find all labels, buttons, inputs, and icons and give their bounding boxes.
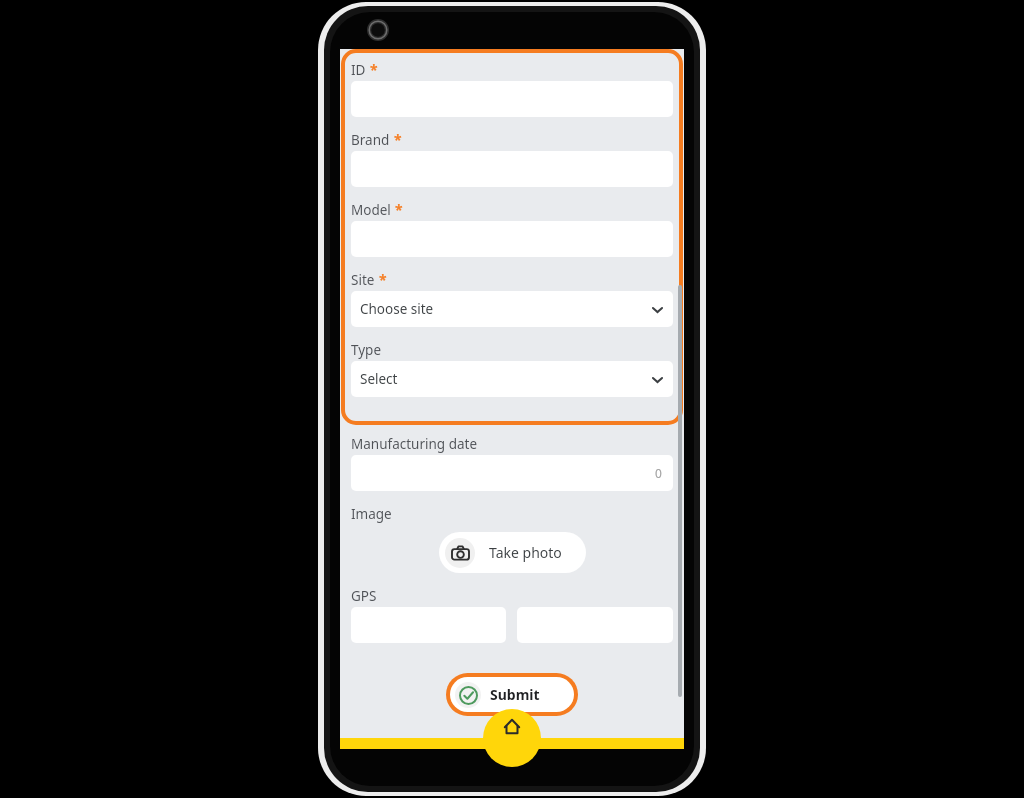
staticText: Take photo xyxy=(489,543,562,562)
staticText: * xyxy=(379,270,387,289)
button[interactable] xyxy=(341,49,683,425)
staticText: Site xyxy=(351,271,375,289)
staticText: 0 xyxy=(655,465,662,481)
button[interactable]: Select xyxy=(351,361,673,397)
staticText: * xyxy=(394,130,402,149)
staticText: Select xyxy=(360,370,398,388)
staticText: * xyxy=(395,200,403,219)
button[interactable]: 0 xyxy=(351,455,673,491)
staticText: Brand xyxy=(351,131,390,149)
staticText: Submit xyxy=(490,685,540,704)
staticText: Image xyxy=(351,505,392,523)
button[interactable]: Home xyxy=(483,709,541,738)
staticText: Type xyxy=(351,341,382,359)
staticText: * xyxy=(370,60,378,79)
staticText: Manufacturing date xyxy=(351,435,477,453)
button[interactable]: Choose site xyxy=(351,291,673,327)
staticText: Model xyxy=(351,201,391,219)
staticText: ID xyxy=(351,61,366,79)
button[interactable]: Take photo xyxy=(439,532,586,573)
staticText: Choose site xyxy=(360,300,434,318)
staticText: GPS xyxy=(351,587,377,605)
button[interactable]: Submit xyxy=(446,673,578,716)
